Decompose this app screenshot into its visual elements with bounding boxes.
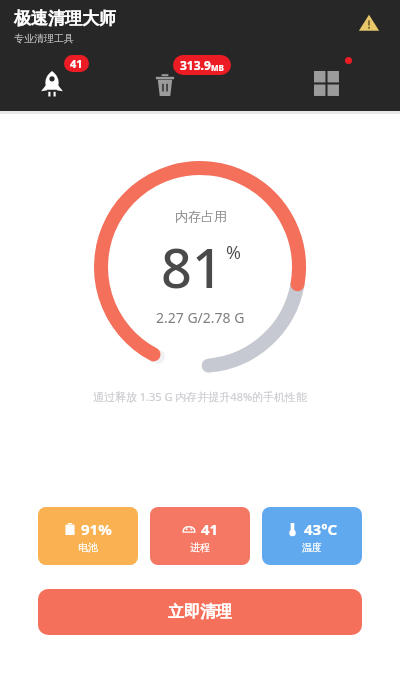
staticText: 电池 [78, 541, 98, 554]
staticText: 41 [70, 56, 83, 71]
staticText: 313.9 [180, 57, 211, 73]
button[interactable]: 41 [150, 507, 250, 565]
staticText: 极速清理大师 [14, 8, 116, 29]
staticText: 81 [161, 230, 223, 304]
staticText: 2.27 G/2.78 G [156, 308, 245, 327]
staticText: 专业清理工具 [14, 32, 74, 45]
button[interactable]: Warning [354, 8, 384, 38]
staticText: MB [211, 62, 224, 73]
button[interactable]: 43°C [262, 507, 362, 565]
button[interactable]: Boost [31, 55, 103, 97]
staticText: 通过释放 1.35 G 内存并提升48%的手机性能 [0, 389, 400, 404]
staticText: 立即清理 [168, 602, 232, 622]
staticText: 内存占用 [175, 208, 227, 224]
staticText: 进程 [190, 541, 210, 554]
button[interactable]: Junk files [141, 55, 261, 97]
staticText: % [226, 240, 241, 265]
staticText: 43°C [304, 519, 338, 539]
staticText: 41 [201, 519, 219, 539]
staticText: 温度 [302, 541, 322, 554]
button[interactable]: More tools [308, 55, 360, 97]
staticText: 91% [81, 519, 112, 539]
button[interactable]: 立即清理 [38, 589, 362, 635]
button[interactable]: 91% [38, 507, 138, 565]
